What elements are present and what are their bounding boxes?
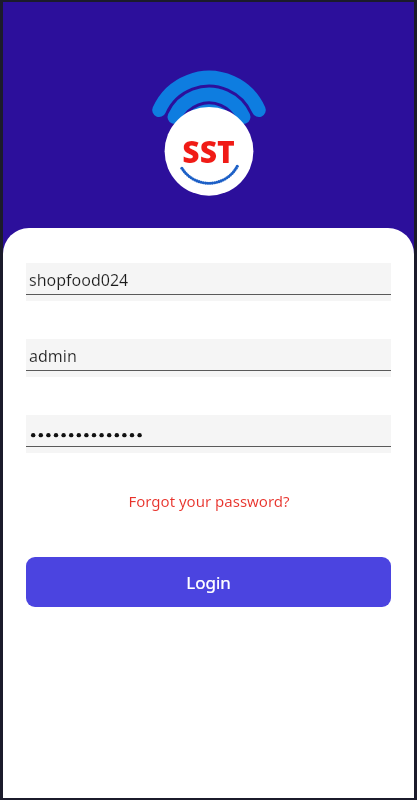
button[interactable]: shopfood024 (26, 263, 391, 301)
staticText: Login (186, 571, 231, 594)
staticText: shopfood024 (29, 269, 129, 291)
button[interactable]: Login (26, 557, 391, 607)
button[interactable] (26, 415, 391, 453)
button[interactable]: admin (26, 339, 391, 377)
staticText: Forgot your password? (128, 491, 290, 511)
staticText: admin (29, 345, 77, 367)
staticText: SST (182, 131, 235, 172)
button[interactable]: Forgot your password? (3, 485, 414, 517)
